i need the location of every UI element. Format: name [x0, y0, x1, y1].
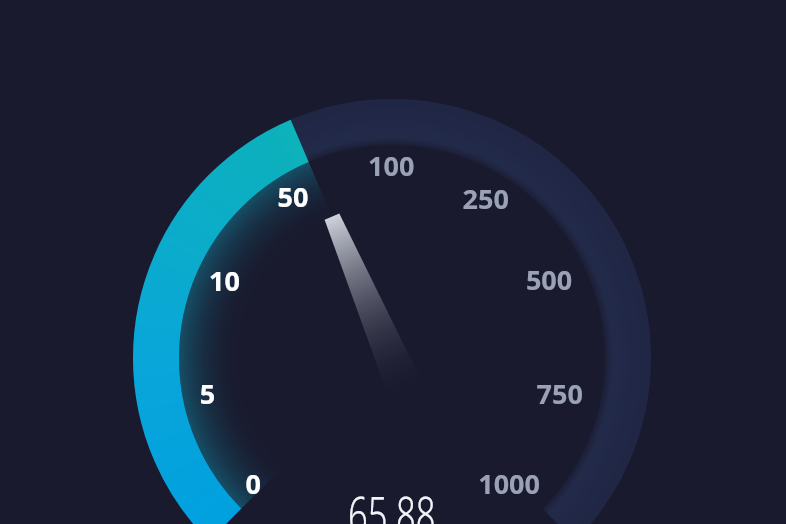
button[interactable] — [0, 0, 786, 524]
